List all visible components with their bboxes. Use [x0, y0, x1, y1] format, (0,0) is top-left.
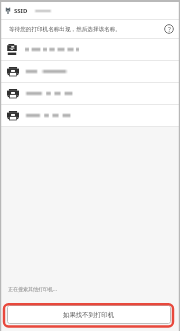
- staticText: SSID: [14, 7, 28, 15]
- button[interactable]: [0, 61, 180, 83]
- staticText: 正在搜索其他打印机...: [8, 286, 58, 293]
- staticText: ?: [168, 25, 171, 34]
- staticText: 如果找不到打印机: [63, 311, 115, 319]
- staticText: 等待您的打印机名称出现，然后选择该名称。: [9, 26, 121, 33]
- button[interactable]: Help: [164, 24, 174, 34]
- button[interactable]: [0, 105, 180, 127]
- button[interactable]: 如果找不到打印机: [7, 305, 171, 324]
- button[interactable]: [0, 39, 180, 61]
- button[interactable]: [0, 83, 180, 105]
